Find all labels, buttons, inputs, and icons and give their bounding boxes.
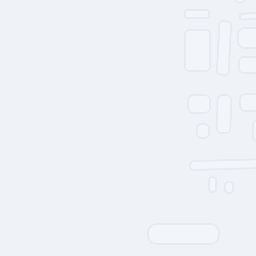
- button[interactable]: Card: [239, 93, 256, 112]
- button[interactable]: Title placeholder: [184, 9, 210, 19]
- button[interactable]: Card: [184, 29, 211, 72]
- button[interactable]: Card: [238, 56, 256, 74]
- button[interactable]: Progress: [189, 158, 256, 171]
- button[interactable]: Icon: [224, 181, 234, 194]
- button[interactable]: Card: [215, 20, 232, 76]
- button[interactable]: Avatar: [234, 0, 246, 4]
- button[interactable]: Card: [237, 27, 256, 49]
- button[interactable]: Continue: [147, 223, 220, 245]
- button[interactable]: Card: [215, 94, 233, 134]
- button[interactable]: Card: [187, 94, 211, 114]
- button[interactable]: Chip: [196, 123, 210, 139]
- button[interactable]: Card: [252, 119, 256, 142]
- button[interactable]: Subtitle placeholder: [239, 11, 256, 21]
- button[interactable]: Icon: [208, 176, 217, 193]
